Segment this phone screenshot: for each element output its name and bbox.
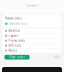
staticText: Checkout bbox=[25, 4, 38, 7]
staticText: > bbox=[57, 39, 59, 42]
button[interactable]: Promo code bbox=[2, 38, 61, 43]
staticText: Standard ship bbox=[9, 22, 27, 25]
staticText: > bbox=[57, 44, 59, 47]
staticText: > bbox=[57, 29, 59, 32]
staticText: $42 bbox=[54, 55, 60, 59]
button[interactable]: Place order bbox=[4, 55, 29, 59]
staticText: > bbox=[57, 34, 59, 37]
button[interactable]: Address bbox=[2, 28, 61, 33]
staticText: Payment bbox=[8, 34, 19, 37]
button[interactable]: Gift note bbox=[2, 43, 61, 48]
staticText: Gift note bbox=[8, 44, 21, 47]
button[interactable]: Notes bbox=[2, 48, 61, 53]
staticText: > bbox=[57, 49, 59, 52]
staticText: Review order bbox=[5, 17, 22, 20]
button[interactable]: Payment bbox=[2, 33, 61, 38]
staticText: Place order bbox=[9, 55, 25, 59]
staticText: Promo code bbox=[8, 39, 25, 42]
staticText: Address bbox=[8, 29, 19, 32]
staticText: Notes bbox=[8, 49, 16, 52]
